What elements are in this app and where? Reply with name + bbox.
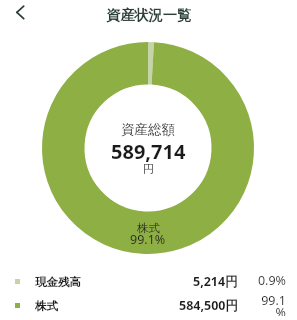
staticText: 株式 [35, 299, 58, 313]
staticText: 99.1% [130, 231, 166, 248]
staticText: 円 [143, 162, 154, 176]
staticText: 99.1 % [256, 292, 286, 316]
staticText: 株式 [137, 221, 160, 235]
staticText: 589,714 [111, 138, 186, 165]
staticText: 0.9% [256, 272, 286, 289]
button[interactable]: Back [0, 0, 40, 27]
staticText: 5,214円 [193, 273, 238, 290]
staticText: 現金残高 [35, 275, 81, 289]
button[interactable]: 株式 [0, 294, 297, 318]
button[interactable]: 現金残高 [0, 270, 297, 294]
staticText: 資産総額 [121, 121, 175, 138]
staticText: 584,500円 [179, 297, 238, 314]
staticText: 資産状況一覧 [106, 6, 192, 24]
